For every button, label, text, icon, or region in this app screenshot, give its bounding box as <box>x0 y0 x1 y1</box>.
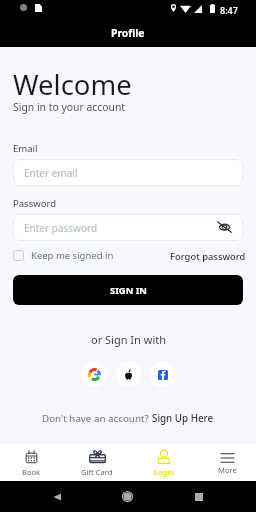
button[interactable]: Back <box>53 493 61 501</box>
staticText: Email <box>13 142 38 155</box>
staticText: Gift Card <box>81 467 113 477</box>
button[interactable]: Sign in with Google <box>80 360 109 389</box>
button[interactable]: Sign in with Apple <box>114 360 143 389</box>
button[interactable]: Enter email <box>13 159 243 186</box>
button[interactable]: Home <box>122 491 133 502</box>
staticText: SIGN IN <box>110 284 147 297</box>
button[interactable]: Book <box>1 444 61 481</box>
staticText: Sign in to your account <box>13 100 126 114</box>
button[interactable]: SIGN IN <box>13 275 243 305</box>
staticText: Enter password <box>24 221 98 235</box>
button[interactable]: Sign Up Here <box>152 412 214 425</box>
staticText: Enter email <box>24 166 78 180</box>
button[interactable]: Show password <box>216 220 232 236</box>
staticText: Book <box>22 467 41 477</box>
staticText: Don't have an account? <box>42 412 152 425</box>
staticText: Keep me signed in <box>31 249 114 262</box>
staticText: Login <box>154 467 174 477</box>
button[interactable]: More <box>197 444 256 481</box>
button[interactable]: Keep me signed in <box>13 249 114 262</box>
staticText: Password <box>13 197 56 210</box>
staticText: More <box>218 465 237 475</box>
staticText: 8:47 <box>220 4 238 16</box>
button[interactable]: Login <box>134 444 194 481</box>
button[interactable]: Sign in with Facebook <box>148 360 177 389</box>
button[interactable]: Forgot password <box>170 250 246 263</box>
button[interactable]: Gift Card <box>67 444 127 481</box>
button[interactable]: Enter password <box>13 214 243 241</box>
staticText: or Sign In with <box>91 332 166 347</box>
staticText: Profile <box>111 26 145 40</box>
staticText: Welcome <box>13 66 132 103</box>
